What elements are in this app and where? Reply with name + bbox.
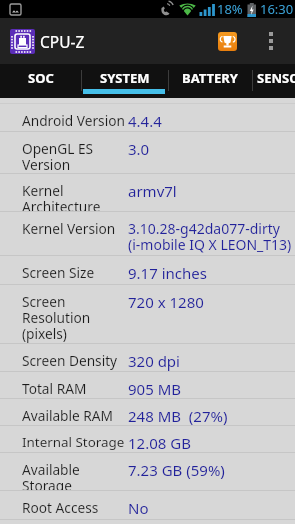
staticText: Root Access xyxy=(22,498,128,517)
staticText: SENSOR xyxy=(257,69,295,87)
button[interactable]: Android Version xyxy=(0,104,295,131)
staticText: 7.23 GB (59%) xyxy=(128,460,225,480)
button[interactable]: Screen Density xyxy=(0,344,295,371)
staticText: Kernel Version xyxy=(22,219,128,238)
staticText: armv7l xyxy=(128,181,177,201)
staticText: BATTERY xyxy=(182,69,238,87)
staticText: Kernel Architecture xyxy=(22,181,128,211)
staticText: Internal Storage xyxy=(22,433,128,451)
button[interactable] xyxy=(218,32,237,51)
staticText: No xyxy=(128,498,149,518)
staticText: 720 x 1280 xyxy=(128,292,204,312)
button[interactable]: Internal Storage xyxy=(0,426,295,452)
staticText: Available Storage xyxy=(22,460,128,490)
staticText: SYSTEM xyxy=(100,69,150,87)
staticText: 18% xyxy=(217,0,243,18)
button[interactable]: Available RAM xyxy=(0,399,295,425)
staticText: 905 MB xyxy=(128,379,181,398)
staticText: 3.10.28-g42da077-dirty (i-mobile IQ X LE… xyxy=(128,219,292,254)
staticText: 248 MB (27%) xyxy=(128,406,228,425)
staticText: Screen Density xyxy=(22,351,128,370)
button[interactable]: Kernel Architecture xyxy=(0,174,295,211)
button[interactable]: SOC xyxy=(0,64,81,98)
staticText: CPU-Z xyxy=(40,31,85,52)
staticText: Available RAM xyxy=(22,406,128,425)
button[interactable] xyxy=(258,23,284,59)
staticText: Screen Size xyxy=(22,263,128,282)
button[interactable]: Screen Resolution (pixels) xyxy=(0,285,295,343)
staticText: Screen Resolution (pixels) xyxy=(22,292,128,343)
button[interactable] xyxy=(253,64,295,98)
staticText: Android Version xyxy=(22,111,128,130)
button[interactable]: OpenGL ES Version xyxy=(0,132,295,173)
staticText: 320 dpi xyxy=(128,351,180,371)
button[interactable]: Root Access xyxy=(0,491,295,519)
button[interactable]: SYSTEM xyxy=(81,64,168,98)
button[interactable]: Available Storage xyxy=(0,453,295,490)
staticText: 16:30 xyxy=(260,0,294,18)
button[interactable]: Screen Size xyxy=(0,256,295,284)
staticText: OpenGL ES Version xyxy=(22,139,128,173)
staticText: 12.08 GB xyxy=(128,433,191,452)
button[interactable]: Total RAM xyxy=(0,372,295,398)
button[interactable]: BATTERY xyxy=(168,64,252,98)
staticText: SOC xyxy=(28,69,54,87)
staticText: 4.4.4 xyxy=(128,111,162,131)
staticText: 3.0 xyxy=(128,139,150,159)
staticText: 9.17 inches xyxy=(128,263,207,283)
staticText: Total RAM xyxy=(22,379,128,398)
button[interactable]: Kernel Version xyxy=(0,212,295,255)
